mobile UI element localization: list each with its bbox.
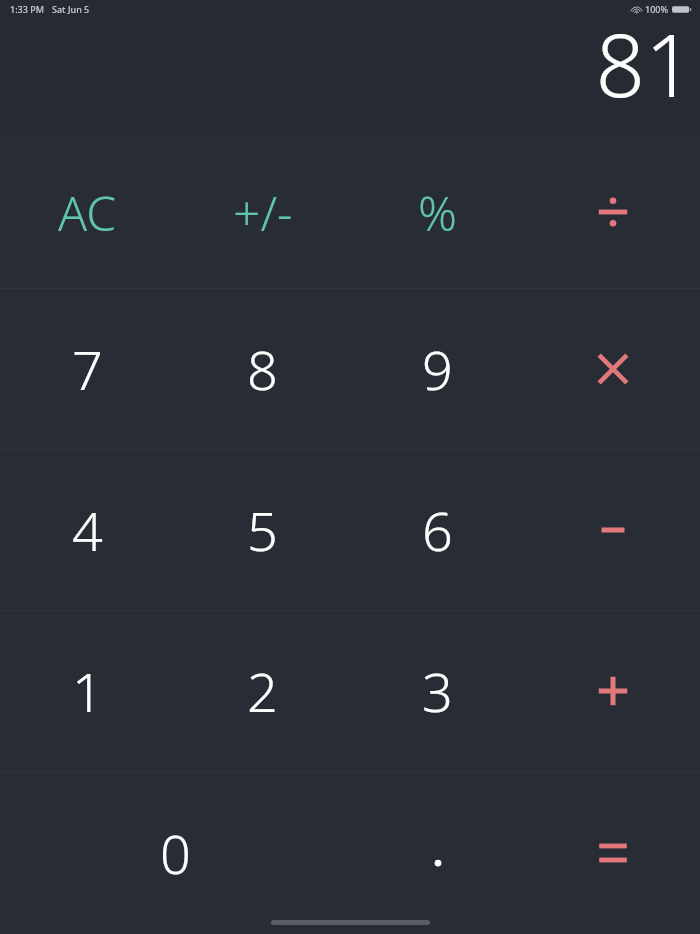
button[interactable]: 7 bbox=[0, 289, 175, 449]
staticText: 9 bbox=[422, 332, 453, 406]
staticText: 1 bbox=[72, 654, 103, 728]
staticText: 8 bbox=[247, 332, 278, 406]
button[interactable]: Minus bbox=[525, 450, 700, 610]
staticText: 5 bbox=[247, 493, 278, 567]
button[interactable]: 2 bbox=[175, 611, 350, 771]
button[interactable]: Decimal point bbox=[350, 772, 525, 934]
button[interactable]: Plus bbox=[525, 611, 700, 771]
button[interactable]: % bbox=[350, 136, 525, 288]
staticText: 2 bbox=[247, 654, 278, 728]
button[interactable]: 3 bbox=[350, 611, 525, 771]
button[interactable]: 4 bbox=[0, 450, 175, 610]
button[interactable]: 0 bbox=[0, 772, 350, 934]
staticText: 6 bbox=[422, 493, 453, 567]
button[interactable]: 5 bbox=[175, 450, 350, 610]
staticText: 0 bbox=[160, 816, 191, 890]
staticText: % bbox=[418, 180, 457, 245]
button[interactable]: +/- bbox=[175, 136, 350, 288]
button[interactable]: 9 bbox=[350, 289, 525, 449]
button[interactable]: AC bbox=[0, 136, 175, 288]
button[interactable]: Equals bbox=[525, 772, 700, 934]
staticText: 100% bbox=[645, 3, 669, 15]
button[interactable]: Divide bbox=[525, 136, 700, 288]
staticText: 81 bbox=[0, 5, 694, 122]
staticText: 3 bbox=[422, 654, 453, 728]
button[interactable]: 8 bbox=[175, 289, 350, 449]
staticText: 4 bbox=[72, 493, 103, 567]
staticText: Sat Jun 5 bbox=[52, 3, 90, 15]
staticText: AC bbox=[58, 180, 117, 245]
staticText: 7 bbox=[72, 332, 103, 406]
button[interactable]: 6 bbox=[350, 450, 525, 610]
button[interactable]: 1 bbox=[0, 611, 175, 771]
button[interactable]: Multiply bbox=[525, 289, 700, 449]
staticText: 1:33 PM bbox=[10, 3, 44, 15]
staticText: +/- bbox=[233, 180, 293, 245]
